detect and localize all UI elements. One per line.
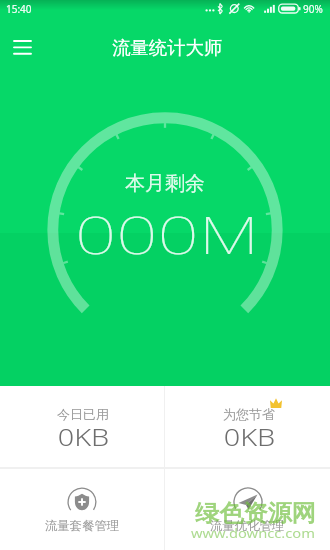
button[interactable]: Menu <box>5 30 40 64</box>
staticText: 流量套餐管理 <box>45 518 120 534</box>
button[interactable]: 为您节省 <box>165 386 330 467</box>
staticText: 90% <box>303 2 323 16</box>
staticText: 流量统计大师 <box>112 36 223 59</box>
staticText: 流量优化管理 <box>210 518 285 534</box>
staticText: 0KB <box>58 421 110 452</box>
staticText: 本月剩余 <box>125 171 205 196</box>
staticText: 000M <box>75 198 260 269</box>
button[interactable]: 今日已用 <box>0 386 164 467</box>
button[interactable]: 流量优化管理 <box>165 469 330 550</box>
staticText: 为您节省 <box>223 406 275 422</box>
staticText: 绿色资源网 <box>195 499 316 528</box>
button[interactable]: 流量套餐管理 <box>0 469 164 550</box>
staticText: 0KB <box>224 421 276 452</box>
staticText: 今日已用 <box>57 406 109 422</box>
staticText: 15:40 <box>6 2 32 16</box>
staticText: www.downcc.com <box>191 524 315 542</box>
